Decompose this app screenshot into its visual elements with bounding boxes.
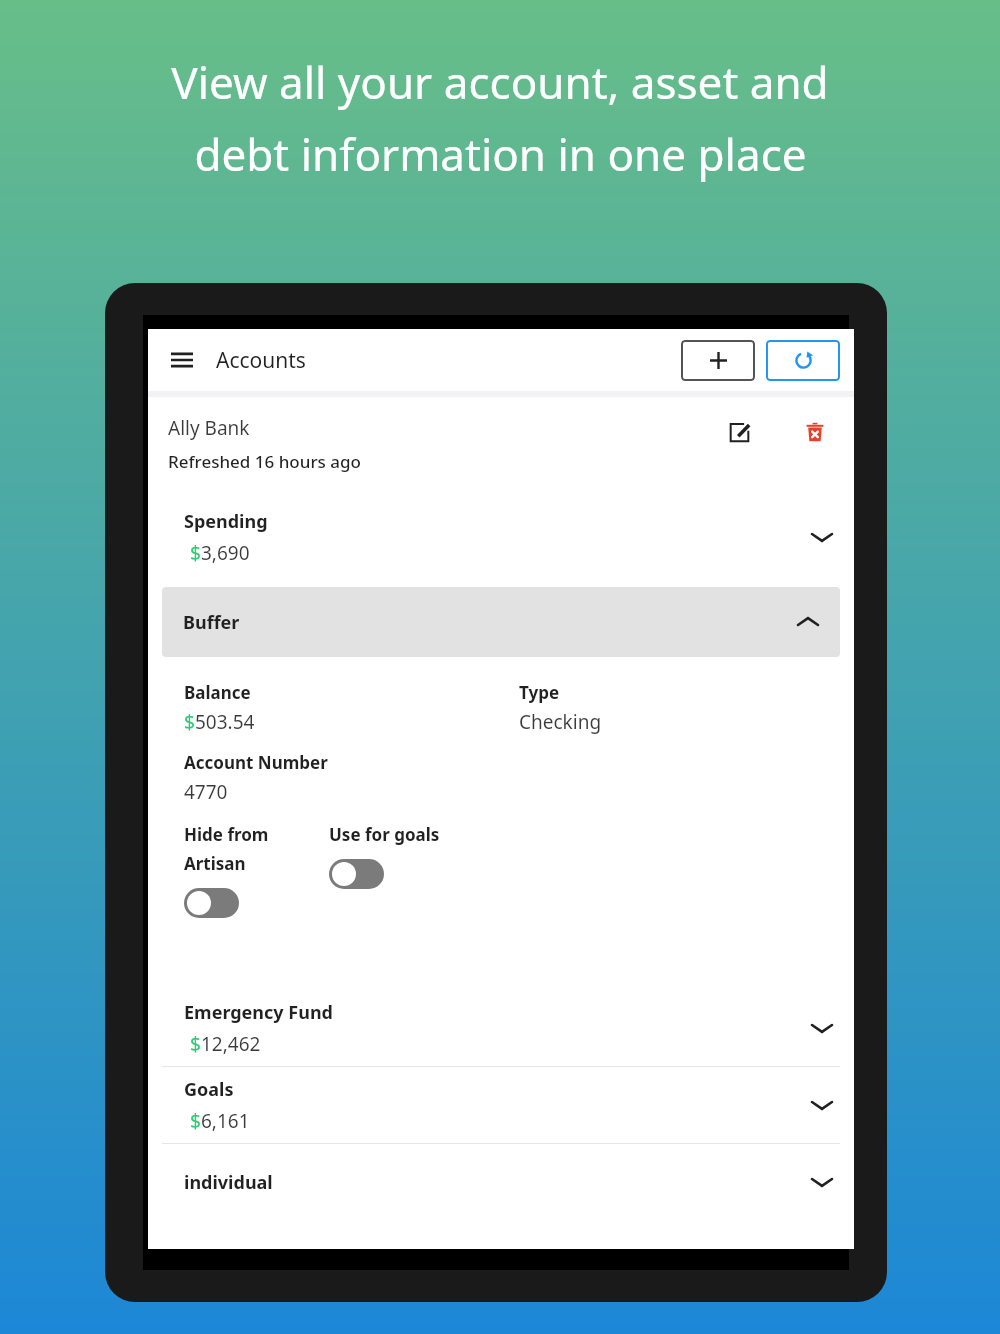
- staticText: individual: [184, 1170, 273, 1195]
- staticText: Accounts: [216, 346, 306, 375]
- button[interactable]: Toggle: [329, 859, 384, 889]
- staticText: $: [190, 540, 201, 566]
- staticText: Refreshed 16 hours ago: [168, 450, 361, 473]
- staticText: Account Number: [184, 751, 328, 774]
- staticText: 4770: [184, 779, 228, 805]
- button[interactable]: Refresh: [766, 340, 840, 381]
- staticText: Hide from: [184, 823, 269, 846]
- staticText: 3,690: [201, 540, 250, 566]
- button[interactable]: Goals: [148, 1067, 854, 1143]
- staticText: Use for goals: [329, 823, 440, 846]
- staticText: Goals: [184, 1077, 234, 1102]
- staticText: Artisan: [184, 852, 246, 875]
- button[interactable]: Emergency Fund: [148, 990, 854, 1066]
- staticText: 12,462: [201, 1031, 261, 1057]
- staticText: Spending: [184, 509, 268, 534]
- button[interactable]: Edit: [722, 415, 756, 449]
- staticText: $: [190, 1108, 201, 1134]
- button[interactable]: Add account: [681, 340, 755, 381]
- staticText: Emergency Fund: [184, 1000, 333, 1025]
- staticText: Checking: [519, 709, 602, 735]
- button[interactable]: Spending: [148, 499, 854, 575]
- staticText: $: [184, 709, 195, 735]
- button[interactable]: Menu: [162, 340, 202, 380]
- staticText: Balance: [184, 681, 251, 704]
- staticText: 6,161: [201, 1108, 250, 1134]
- button[interactable]: Delete: [798, 415, 832, 449]
- staticText: debt information in one place: [194, 124, 807, 184]
- staticText: Type: [519, 681, 560, 704]
- staticText: Buffer: [183, 610, 240, 635]
- button[interactable]: Buffer: [162, 587, 840, 657]
- button[interactable]: Toggle: [184, 888, 239, 918]
- staticText: 503.54: [195, 709, 255, 735]
- staticText: $: [190, 1031, 201, 1057]
- staticText: View all your account, asset and: [171, 52, 829, 112]
- staticText: Ally Bank: [168, 415, 250, 441]
- button[interactable]: individual: [148, 1144, 854, 1220]
